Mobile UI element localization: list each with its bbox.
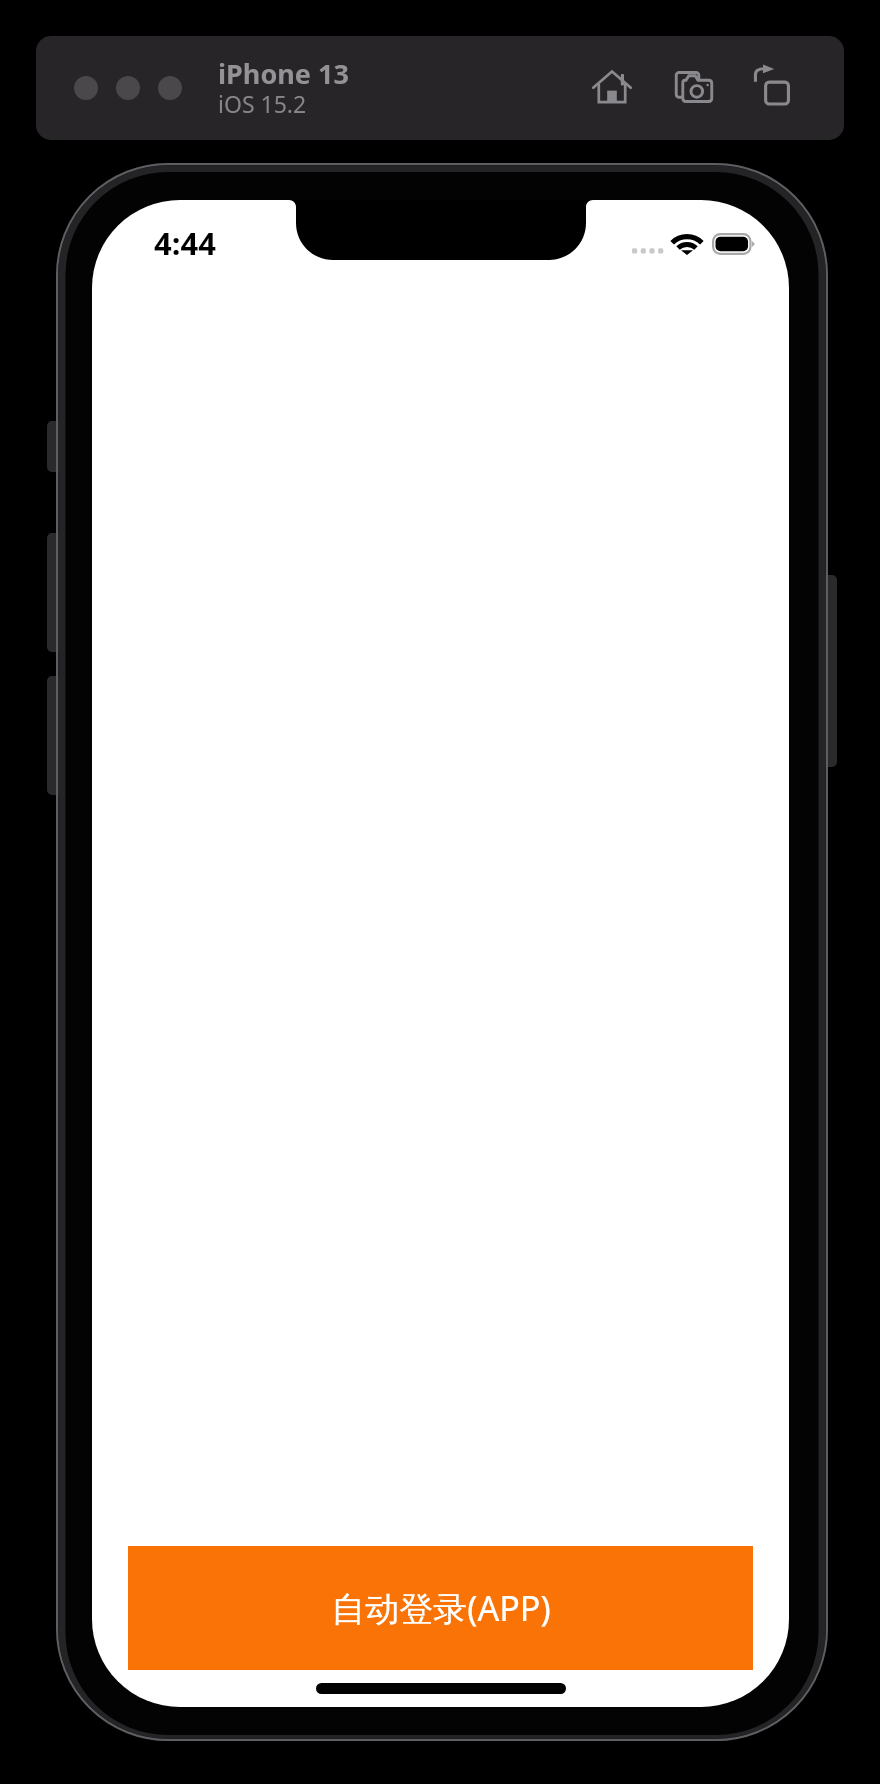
button[interactable]: Home xyxy=(588,63,636,111)
staticText: iPhone 13 xyxy=(218,55,349,92)
button[interactable]: Minimise window xyxy=(116,76,140,100)
button[interactable]: Rotate xyxy=(748,63,796,111)
button[interactable]: 自动登录(APP) xyxy=(128,1546,753,1670)
staticText: iOS 15.2 xyxy=(218,88,307,119)
button[interactable]: Zoom window xyxy=(158,76,182,100)
button[interactable]: Screenshot xyxy=(670,63,718,111)
staticText: 4:44 xyxy=(154,222,216,264)
button[interactable]: Close window xyxy=(74,76,98,100)
staticText: 自动登录(APP) xyxy=(331,1585,551,1631)
